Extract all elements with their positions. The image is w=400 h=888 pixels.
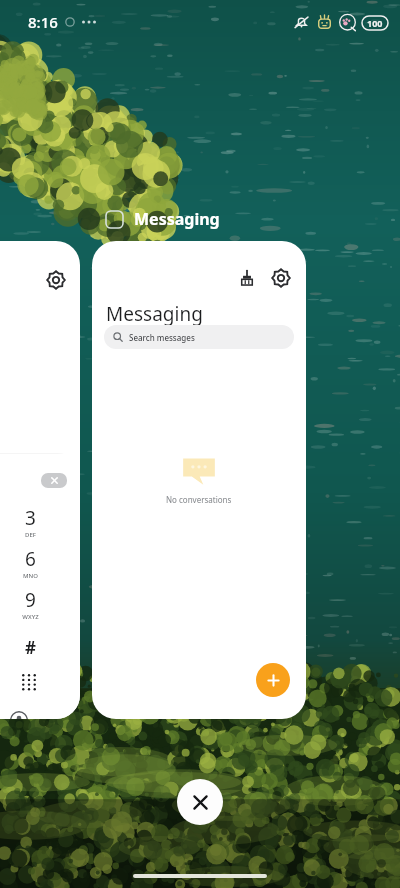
button[interactable]: Close all: [177, 779, 223, 825]
staticText: Search messages: [129, 332, 195, 343]
button[interactable]: Settings: [0, 241, 80, 719]
staticText: 100: [367, 17, 383, 29]
staticText: 9: [25, 587, 36, 613]
button[interactable]: Messaging: [106, 208, 220, 230]
button[interactable]: Search messages: [104, 325, 294, 349]
button[interactable]: Dialpad: [16, 669, 42, 695]
staticText: Messaging: [134, 208, 220, 230]
staticText: 6: [25, 546, 36, 572]
staticText: WXYZ: [22, 613, 39, 621]
button[interactable]: Contacts: [4, 711, 33, 719]
staticText: MNO: [23, 572, 38, 580]
staticText: DEF: [25, 531, 36, 539]
button[interactable]: Settings: [270, 267, 292, 289]
button[interactable]: New conversation: [256, 663, 290, 697]
staticText: No conversations: [166, 494, 232, 505]
staticText: 3: [25, 505, 36, 531]
button[interactable]: Backspace: [41, 473, 67, 488]
staticText: 8:16: [28, 12, 58, 32]
button[interactable]: Clean up: [236, 267, 258, 289]
staticText: Messaging: [106, 301, 203, 327]
button[interactable]: Settings: [45, 269, 67, 291]
button[interactable]: 9: [8, 587, 52, 621]
button[interactable]: 6: [8, 546, 52, 580]
button[interactable]: #: [12, 629, 48, 665]
button[interactable]: Clean up: [92, 241, 306, 719]
staticText: #: [25, 636, 36, 659]
button[interactable]: 3: [8, 505, 52, 539]
